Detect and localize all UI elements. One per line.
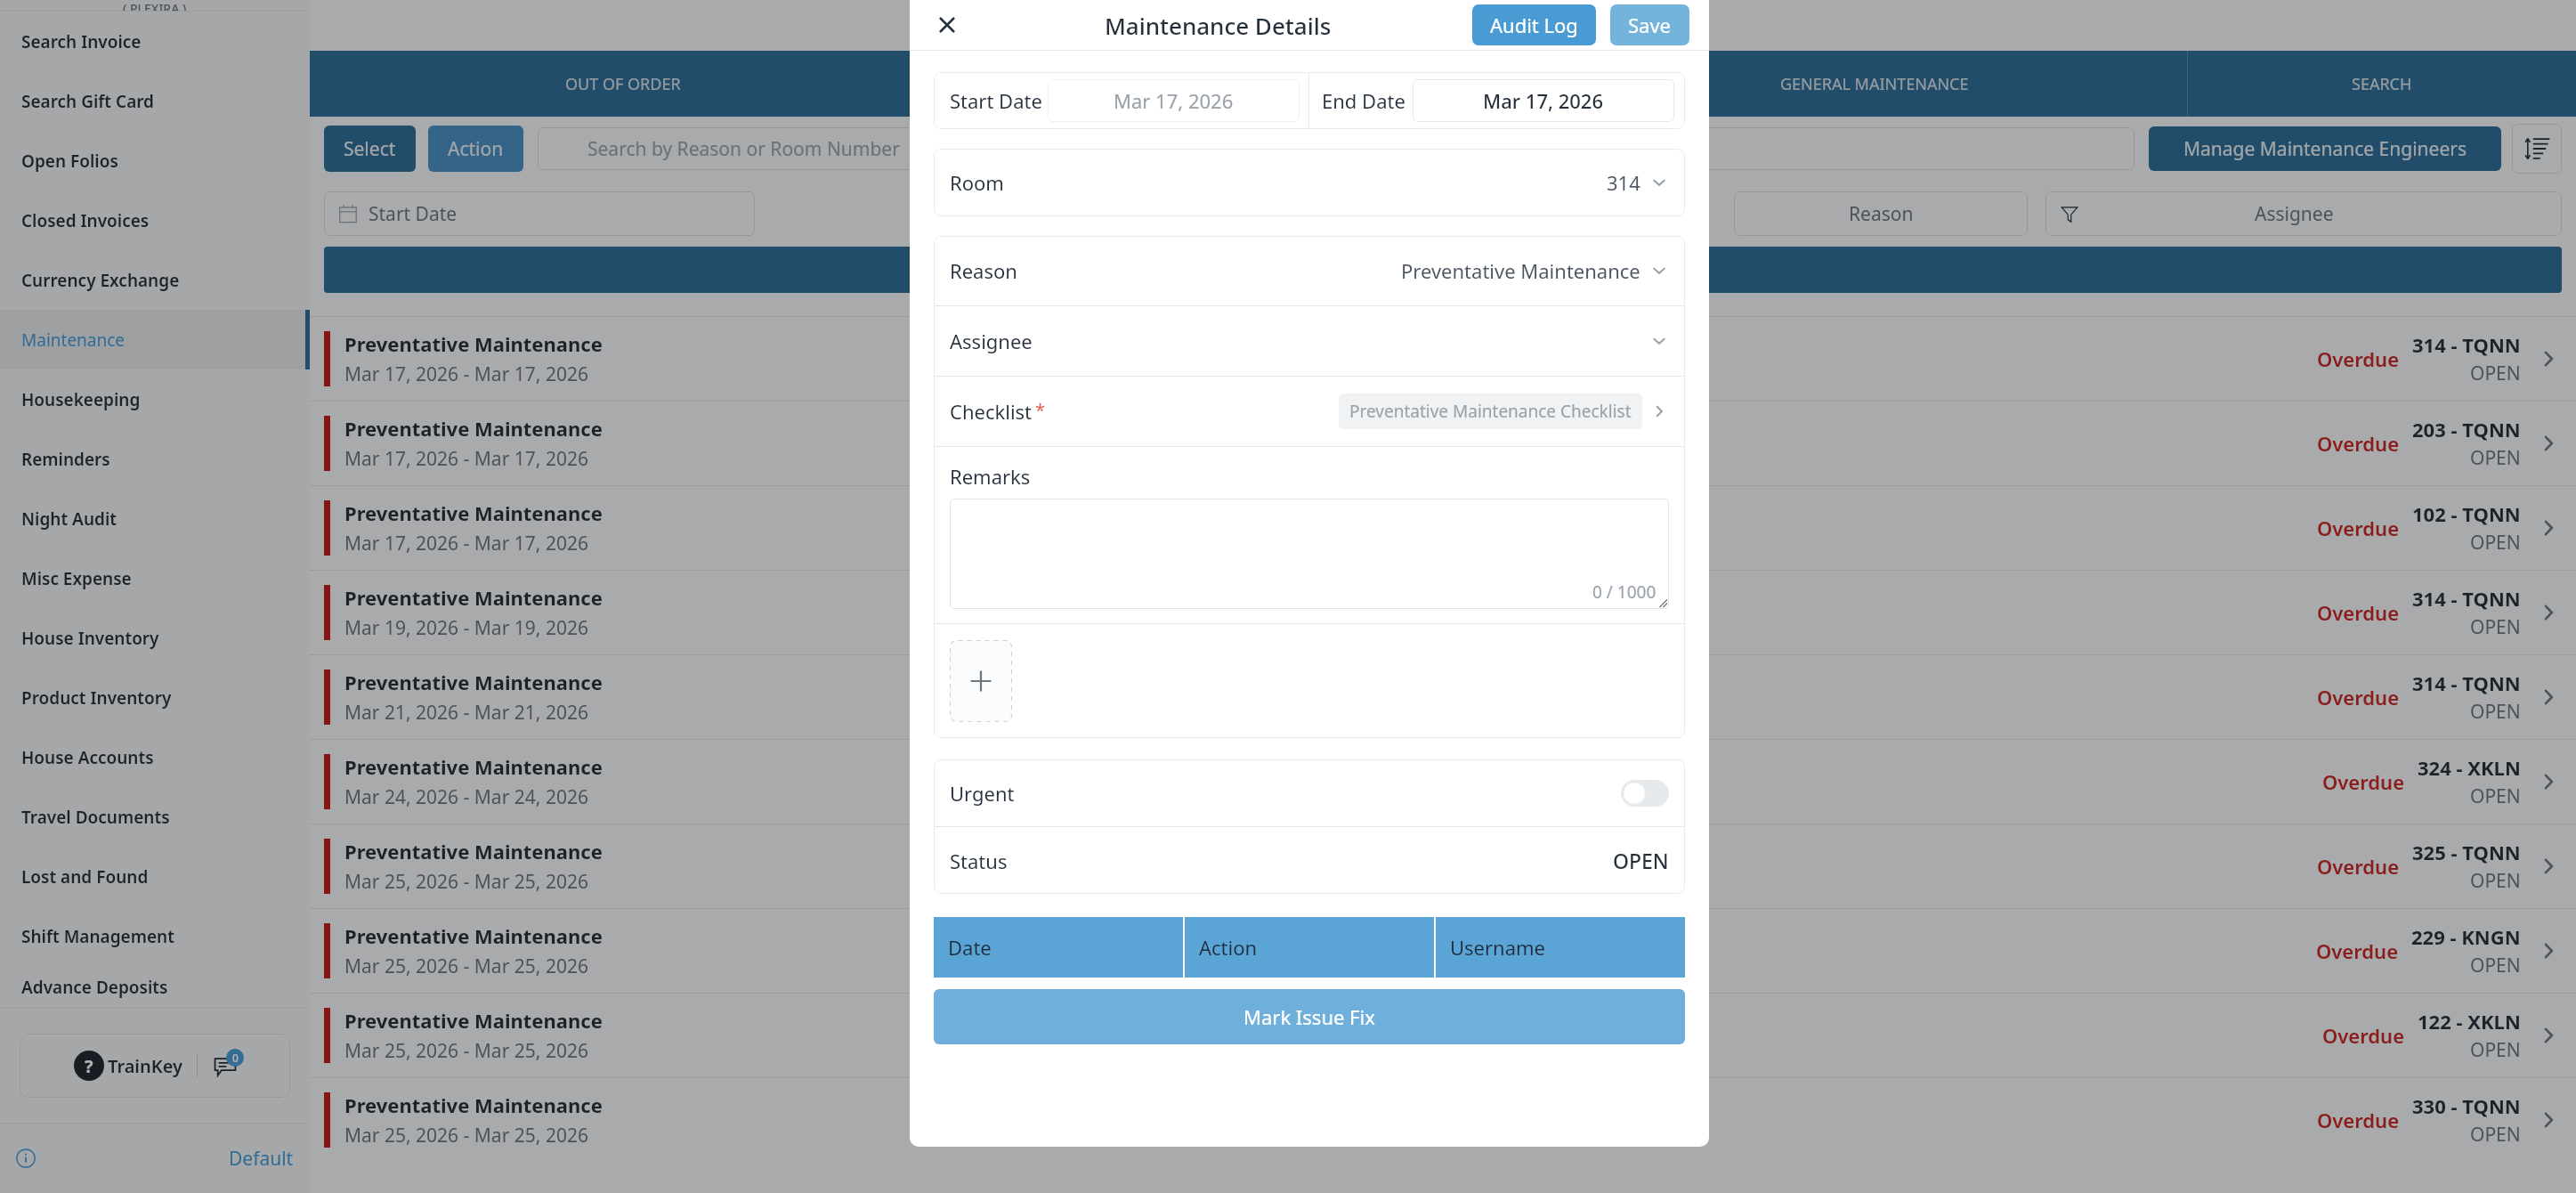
staticText: Maintenance <box>21 329 126 352</box>
button[interactable]: OUT OF SERVICE <box>936 51 1561 117</box>
button[interactable]: Information <box>16 1148 36 1168</box>
button[interactable]: Default <box>229 1146 294 1172</box>
button[interactable]: Reminders <box>0 429 310 489</box>
staticText: Mar 25, 2026 - Mar 25, 2026 <box>344 1038 588 1064</box>
button[interactable]: Search Gift Card <box>0 71 310 131</box>
button[interactable]: Preventative Maintenance <box>324 317 2562 401</box>
staticText: 229 - KNGN <box>2411 923 2521 950</box>
staticText: Preventative Maintenance <box>344 753 603 780</box>
staticText: Overdue <box>2317 515 2400 541</box>
button[interactable]: Currency Exchange <box>0 250 310 310</box>
button[interactable]: Assignee <box>2045 191 2562 236</box>
staticText: OPEN <box>2470 953 2521 978</box>
button[interactable]: Audit Log <box>1472 4 1596 45</box>
staticText: Save <box>1628 12 1672 38</box>
button[interactable]: Lost and Found <box>0 847 310 906</box>
staticText: Preventative Maintenance <box>344 499 603 526</box>
staticText: Mar 17, 2026 - Mar 17, 2026 <box>344 361 588 387</box>
button[interactable]: Advance Deposits <box>0 966 310 1008</box>
staticText: Overdue <box>2317 684 2400 710</box>
staticText: Mar 19, 2026 - Mar 19, 2026 <box>344 615 588 641</box>
button[interactable]: Preventative Maintenance <box>324 402 2562 485</box>
button[interactable]: Urgent <box>950 759 1669 826</box>
staticText: 330 - TQNN <box>2412 1092 2521 1119</box>
button[interactable]: GENERAL MAINTENANCE <box>1562 51 2187 117</box>
button[interactable]: House Accounts <box>0 727 310 787</box>
button[interactable]: Select <box>324 126 416 172</box>
staticText: 314 - TQNN <box>2412 670 2521 696</box>
staticText: OPEN <box>2470 868 2521 894</box>
button[interactable]: Preventative Maintenance <box>324 486 2562 570</box>
button[interactable]: 0 / 1000 <box>950 499 1669 609</box>
button[interactable]: Shift Management <box>0 906 310 966</box>
button[interactable]: Action <box>428 126 523 172</box>
staticText: Currency Exchange <box>21 269 180 292</box>
staticText: OPEN <box>2470 445 2521 471</box>
staticText: Date <box>948 934 992 961</box>
button[interactable]: Product Inventory <box>0 668 310 727</box>
button[interactable]: Preventative Maintenance <box>324 909 2562 993</box>
button[interactable]: Assignee <box>950 306 1669 376</box>
button[interactable]: Closed Invoices <box>0 191 310 250</box>
button[interactable]: Travel Documents <box>0 787 310 847</box>
staticText: Mar 25, 2026 - Mar 25, 2026 <box>344 954 588 979</box>
staticText: Search Invoice <box>21 30 142 53</box>
staticText: Action <box>448 136 504 162</box>
button[interactable]: SEARCH <box>2188 51 2576 117</box>
button[interactable]: Preventative Maintenance <box>324 740 2562 824</box>
button[interactable]: Misc Expense <box>0 548 310 608</box>
button[interactable]: House Inventory <box>0 608 310 668</box>
button[interactable]: OUT OF ORDER <box>310 51 936 117</box>
button[interactable]: End Date <box>1309 72 1685 129</box>
staticText: TrainKey <box>108 1054 182 1078</box>
staticText: Mar 21, 2026 - Mar 21, 2026 <box>344 700 588 726</box>
staticText: Assignee <box>2255 201 2334 227</box>
button[interactable]: Preventative Maintenance <box>324 571 2562 654</box>
button[interactable]: Start Date <box>934 72 1308 129</box>
staticText: Misc Expense <box>21 567 132 590</box>
staticText: Overdue <box>2317 599 2400 626</box>
staticText: 314 <box>1607 169 1640 196</box>
button[interactable]: Save <box>1610 4 1689 45</box>
staticText: Select <box>344 136 396 162</box>
button[interactable]: Room <box>934 149 1685 216</box>
staticText: Start Date <box>369 201 458 227</box>
button[interactable]: Manage Maintenance Engineers <box>2149 126 2501 171</box>
staticText: Checklist <box>950 398 1033 425</box>
button[interactable]: Housekeeping <box>0 369 310 429</box>
button[interactable]: Reason <box>950 236 1669 305</box>
button[interactable]: Start Date <box>324 191 755 236</box>
button[interactable]: ? <box>20 1034 290 1098</box>
staticText: Search by Reason or Room Number <box>587 136 900 162</box>
staticText: Closed Invoices <box>21 209 150 232</box>
staticText: OPEN <box>2470 530 2521 556</box>
staticText: Overdue <box>2322 768 2405 795</box>
button[interactable]: Sort <box>2512 124 2562 174</box>
button[interactable]: Search Invoice <box>0 12 310 71</box>
button[interactable]: Preventative Maintenance <box>324 824 2562 908</box>
button[interactable]: Search by Reason or Room Number <box>538 127 2135 170</box>
staticText: 0 <box>232 1051 239 1065</box>
button[interactable]: Close <box>929 7 965 43</box>
staticText: Mar 25, 2026 - Mar 25, 2026 <box>344 1123 588 1148</box>
staticText: Remarks <box>950 463 1031 490</box>
button[interactable]: Open Folios <box>0 131 310 191</box>
staticText: 0 / 1000 <box>1592 580 1657 604</box>
staticText: Preventative Maintenance Checklist <box>1349 400 1632 423</box>
button[interactable]: Preventative Maintenance <box>324 1078 2562 1162</box>
staticText: Room <box>950 169 1004 196</box>
button[interactable]: Preventative Maintenance <box>324 655 2562 739</box>
staticText: Start Date <box>950 87 1042 114</box>
button[interactable]: Maintenance <box>0 310 310 369</box>
staticText: Preventative Maintenance <box>344 415 603 442</box>
staticText: Preventative Maintenance <box>344 330 603 357</box>
staticText: Status <box>950 848 1008 874</box>
staticText: Username <box>1450 934 1546 961</box>
button[interactable]: Checklist <box>950 377 1669 446</box>
button[interactable]: Preventative Maintenance <box>324 994 2562 1077</box>
button[interactable]: Night Audit <box>0 489 310 548</box>
staticText: OPEN <box>2470 1037 2521 1063</box>
button[interactable]: Add attachment <box>950 640 1012 722</box>
button[interactable]: Mark Issue Fix <box>934 989 1685 1044</box>
button[interactable]: Reason <box>1734 191 2028 236</box>
